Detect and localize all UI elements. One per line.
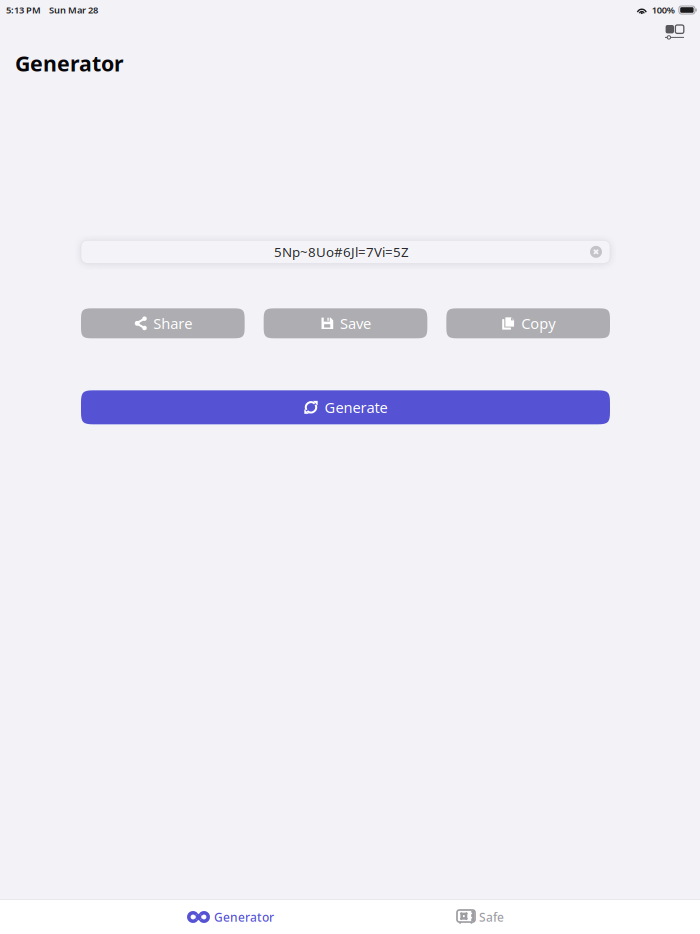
- staticText: Safe: [479, 909, 504, 925]
- staticText: 5Np~8Uo#6Jl=7Vi=5Z: [274, 243, 409, 261]
- staticText: Sun Mar 28: [49, 4, 98, 16]
- staticText: 100%: [652, 4, 675, 16]
- button[interactable]: Safe: [447, 900, 514, 934]
- staticText: Copy: [521, 314, 555, 333]
- button[interactable]: Generator: [177, 900, 284, 934]
- staticText: Generator: [15, 49, 124, 77]
- staticText: Generate: [324, 398, 387, 417]
- staticText: Save: [340, 314, 371, 333]
- button[interactable]: Multitasking controls: [662, 22, 687, 42]
- staticText: Generator: [214, 909, 274, 925]
- staticText: Share: [153, 314, 192, 333]
- button[interactable]: Generate: [81, 390, 610, 424]
- staticText: 5:13 PM: [6, 4, 41, 16]
- button[interactable]: Share: [81, 308, 245, 338]
- button[interactable]: Copy: [446, 308, 610, 338]
- button[interactable]: Save: [264, 308, 427, 338]
